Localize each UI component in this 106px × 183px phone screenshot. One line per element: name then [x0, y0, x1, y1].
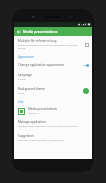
staticText: Manages video application and can store …	[18, 125, 79, 128]
staticText: Green	[18, 92, 25, 95]
button[interactable]: Multiple file reference bug	[14, 36, 92, 53]
staticText: Feel free to share thoughts or suggestio…	[18, 139, 64, 142]
button[interactable]: Change application appearance	[14, 60, 92, 70]
staticText: Change application appearance	[18, 63, 64, 67]
staticText: Version 1.4	[28, 112, 40, 115]
staticText: Multiple file reference bug	[18, 39, 57, 43]
button[interactable]: Media presentations	[14, 105, 92, 117]
staticText: Appearance	[18, 55, 34, 59]
button[interactable]: Manage application	[14, 117, 92, 131]
staticText: Changed references by previous reference…	[18, 44, 83, 50]
staticText: Suggestion	[18, 134, 34, 138]
staticText: Info	[18, 100, 24, 104]
staticText: System	[18, 78, 26, 81]
staticText: Background theme	[18, 87, 45, 91]
staticText: Media presentations	[28, 107, 57, 111]
button[interactable]: Navigate back	[14, 27, 23, 36]
button[interactable]: Background theme	[14, 84, 92, 98]
button[interactable]: Language	[14, 70, 92, 84]
staticText: Media presentations	[23, 29, 58, 34]
staticText: Manage application	[18, 120, 46, 124]
staticText: Language	[18, 73, 33, 77]
button[interactable]: Suggestion	[14, 131, 92, 145]
